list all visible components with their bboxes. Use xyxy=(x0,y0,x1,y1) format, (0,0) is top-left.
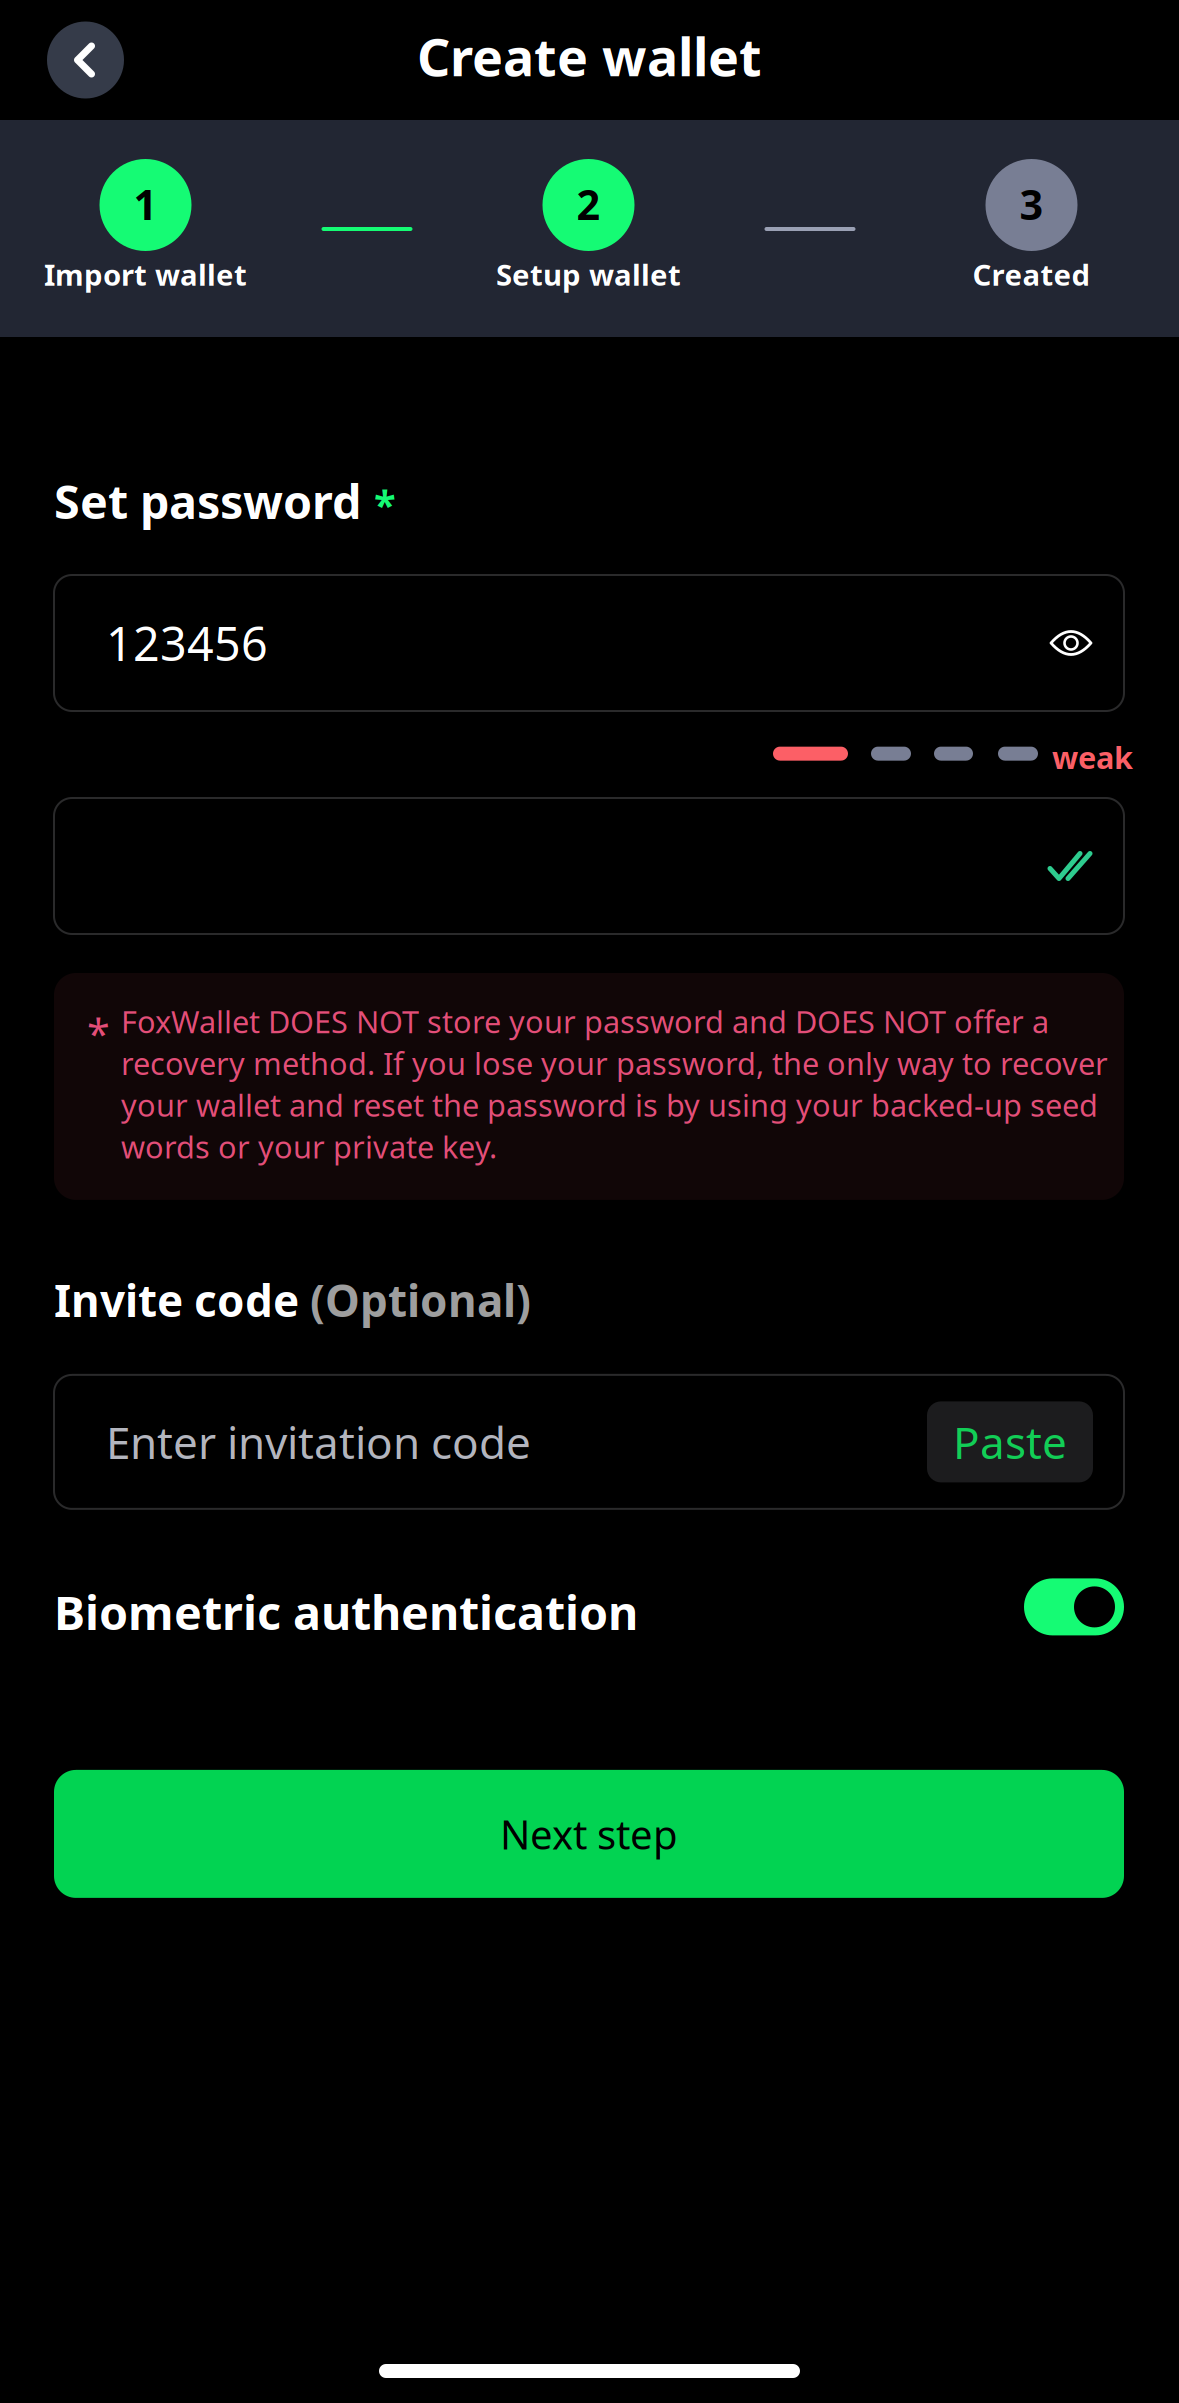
staticText: * xyxy=(87,1006,110,1061)
button[interactable]: 123456 xyxy=(54,575,1124,711)
button[interactable]: Biometric authentication xyxy=(1024,1583,1124,1640)
button[interactable]: Enter invitation code xyxy=(54,1375,1124,1509)
button[interactable]: Next step xyxy=(54,1770,1124,1898)
staticText: 3 xyxy=(1019,177,1043,231)
staticText: Import wallet xyxy=(44,255,247,294)
staticText: 1 xyxy=(133,177,157,231)
staticText: Invite code xyxy=(54,1271,299,1329)
staticText: Created xyxy=(972,255,1090,294)
staticText: Biometric authentication xyxy=(54,1581,638,1643)
staticText: 2 xyxy=(576,177,600,231)
staticText: FoxWallet DOES NOT store your password a… xyxy=(121,1001,1108,1167)
button[interactable]: Back xyxy=(47,21,124,98)
button[interactable]: Show password xyxy=(1049,627,1093,659)
staticText: Set password xyxy=(54,470,361,532)
staticText: (Optional) xyxy=(299,1271,531,1329)
staticText: Paste xyxy=(953,1413,1067,1471)
staticText: Enter invitation code xyxy=(106,1413,531,1471)
staticText: Next step xyxy=(500,1807,678,1860)
staticText: Create wallet xyxy=(417,21,762,91)
staticText: 123456 xyxy=(106,612,268,674)
button[interactable]: Paste xyxy=(927,1401,1093,1482)
button[interactable]: Confirm password xyxy=(54,798,1124,934)
staticText: Setup wallet xyxy=(496,255,681,294)
staticText: * xyxy=(374,477,396,530)
staticText: weak xyxy=(1052,737,1133,777)
